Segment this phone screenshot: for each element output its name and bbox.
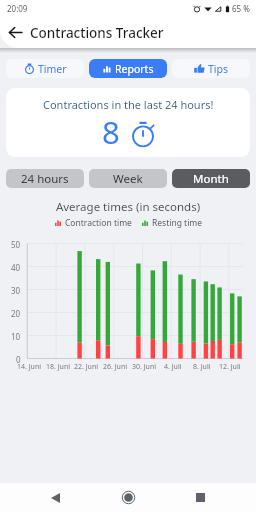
button[interactable]: Timer	[6, 59, 84, 78]
staticText: 40	[11, 262, 21, 272]
staticText: Resting time	[152, 217, 203, 229]
staticText: Month	[193, 171, 229, 187]
staticText: Contraction time	[65, 217, 132, 229]
staticText: 20	[11, 308, 21, 318]
staticText: 22. Juni	[74, 362, 99, 372]
staticText: 18. Juni	[46, 362, 71, 372]
staticText: 20:09	[7, 3, 28, 14]
staticText: 24 hours	[21, 171, 69, 187]
staticText: 12. Juli	[219, 362, 241, 372]
staticText: 14. Juni	[17, 362, 42, 372]
button[interactable]: Tips	[172, 59, 250, 78]
button[interactable]: 24 hours	[6, 169, 84, 188]
staticText: 0	[16, 354, 21, 364]
staticText: 30. Juni	[132, 362, 157, 372]
staticText: Average times (in seconds)	[0, 199, 256, 215]
button[interactable]: Reports	[89, 59, 167, 78]
button[interactable]: Week	[89, 169, 167, 188]
staticText: 65 %	[232, 3, 250, 14]
staticText: Tips	[208, 62, 229, 76]
staticText: Week	[113, 171, 143, 187]
staticText: 10	[11, 331, 21, 341]
staticText: 8. Juli	[193, 362, 211, 372]
button[interactable]: Back	[0, 17, 30, 48]
staticText: Contractions in the last 24 hours!	[43, 97, 214, 112]
staticText: Contractions Tracker	[30, 24, 164, 42]
staticText: 4. Juli	[164, 362, 182, 372]
staticText: Reports	[115, 62, 154, 76]
staticText: 26. Juni	[103, 362, 128, 372]
button[interactable]: Recents	[187, 483, 214, 512]
staticText: 30	[11, 285, 21, 295]
staticText: 50	[11, 239, 21, 249]
staticText: Timer	[38, 62, 67, 76]
staticText: 8	[102, 111, 120, 153]
button[interactable]: Home	[115, 483, 142, 512]
button[interactable]: Month	[172, 169, 250, 188]
button[interactable]: Back	[42, 483, 69, 512]
